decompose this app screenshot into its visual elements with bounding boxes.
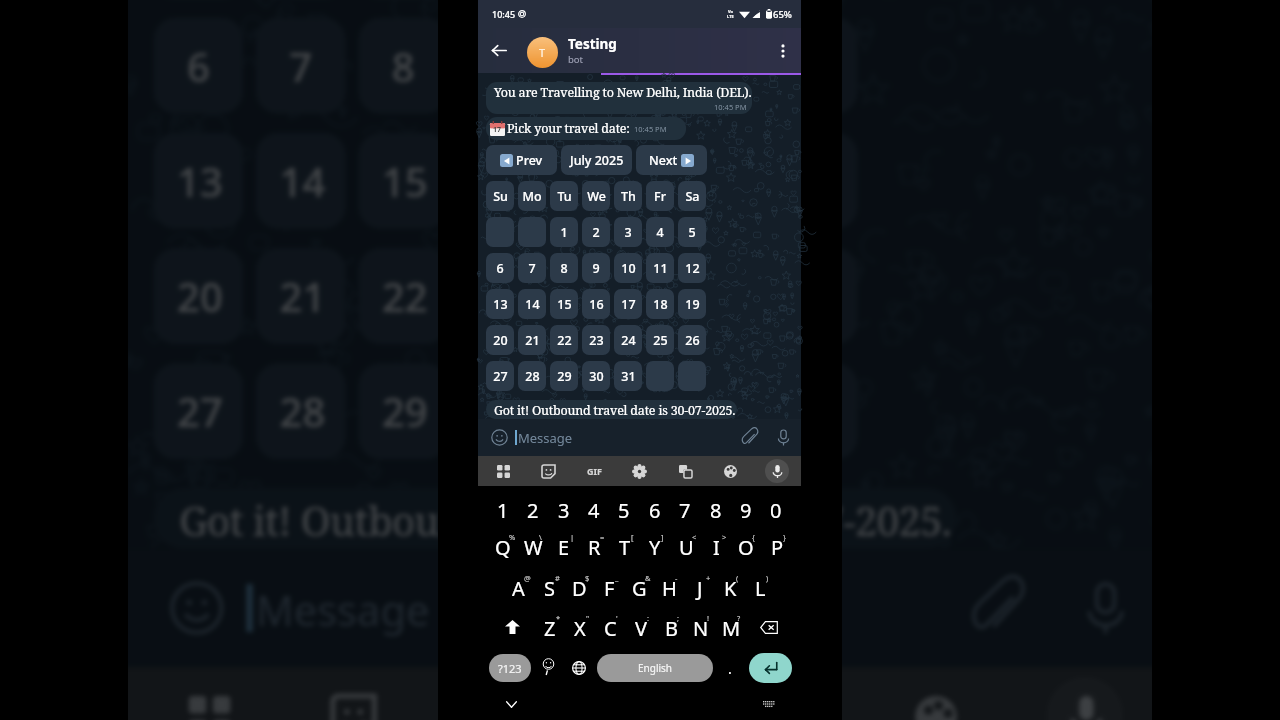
button[interactable]: P xyxy=(762,528,792,566)
button[interactable]: Message xyxy=(510,419,730,456)
button[interactable]: Attach file xyxy=(739,427,759,447)
button[interactable]: We xyxy=(582,181,610,211)
button[interactable]: 31 xyxy=(563,363,653,459)
button[interactable]: 13 xyxy=(154,133,243,229)
button[interactable]: 10 xyxy=(614,253,642,283)
button[interactable]: V xyxy=(626,609,656,647)
button[interactable]: 22 xyxy=(358,248,448,344)
button[interactable]: Voice input xyxy=(765,459,789,483)
button[interactable]: 30 xyxy=(582,361,610,391)
button[interactable]: 17 xyxy=(614,289,642,319)
button[interactable]: 18 xyxy=(666,133,755,229)
button[interactable]: Message xyxy=(230,549,934,667)
button[interactable]: I xyxy=(701,528,731,566)
button[interactable]: 13 xyxy=(486,289,514,319)
button[interactable]: Emoji xyxy=(163,574,227,638)
button[interactable]: 21 xyxy=(518,325,546,355)
button[interactable]: GIF xyxy=(461,667,538,720)
button[interactable]: 9 xyxy=(582,253,610,283)
button[interactable]: 20 xyxy=(486,325,514,355)
button[interactable]: Theme xyxy=(899,667,970,720)
button[interactable]: 18 xyxy=(646,289,674,319)
button[interactable]: . xyxy=(718,652,742,684)
button[interactable]: S xyxy=(534,569,564,607)
button[interactable] xyxy=(646,361,674,391)
button[interactable]: Emoji xyxy=(489,427,509,447)
button[interactable] xyxy=(518,217,546,247)
button[interactable]: B xyxy=(656,609,686,647)
button[interactable]: ?123 xyxy=(489,654,531,682)
button[interactable]: 4 xyxy=(579,491,609,529)
button[interactable]: Voice message xyxy=(1072,574,1136,638)
button[interactable]: Q xyxy=(488,528,518,566)
button[interactable]: K xyxy=(715,569,745,607)
button[interactable]: 10 xyxy=(563,18,653,114)
button[interactable]: Mo xyxy=(518,181,546,211)
button[interactable]: 25 xyxy=(666,248,755,344)
button[interactable]: 23 xyxy=(582,325,610,355)
button[interactable]: Prev xyxy=(486,145,557,175)
button[interactable]: 28 xyxy=(518,361,546,391)
button[interactable]: G xyxy=(624,569,654,607)
button[interactable]: Y xyxy=(640,528,670,566)
button[interactable]: 22 xyxy=(550,325,578,355)
button[interactable]: 21 xyxy=(256,248,346,344)
button[interactable]: 5 xyxy=(678,217,706,247)
button[interactable]: N xyxy=(686,609,716,647)
button[interactable]: Apps xyxy=(492,456,514,486)
button[interactable]: English xyxy=(597,654,713,682)
button[interactable]: 1 xyxy=(550,217,578,247)
button[interactable]: 6 xyxy=(154,18,243,114)
button[interactable]: Emoji xyxy=(535,652,561,684)
button[interactable]: 28 xyxy=(256,363,346,459)
button[interactable]: 15 xyxy=(358,133,448,229)
button[interactable]: 25 xyxy=(646,325,674,355)
button[interactable]: 19 xyxy=(768,133,858,229)
button[interactable]: Attach file xyxy=(963,574,1027,638)
button[interactable]: 20 xyxy=(154,248,243,344)
button[interactable]: Keyboard layout xyxy=(759,694,779,714)
button[interactable]: 8 xyxy=(550,253,578,283)
button[interactable]: Stickers xyxy=(537,456,559,486)
button[interactable]: 6 xyxy=(486,253,514,283)
button[interactable]: 17 xyxy=(563,133,653,229)
button[interactable]: Theme xyxy=(719,456,741,486)
button[interactable]: 26 xyxy=(768,248,858,344)
button[interactable]: 16 xyxy=(461,133,550,229)
button[interactable]: 11 xyxy=(666,18,755,114)
button[interactable]: 14 xyxy=(256,133,346,229)
button[interactable] xyxy=(678,361,706,391)
button[interactable]: M xyxy=(716,609,746,647)
button[interactable]: 23 xyxy=(461,248,550,344)
button[interactable]: 30 xyxy=(461,363,550,459)
button[interactable]: D xyxy=(564,569,594,607)
button[interactable]: 9 xyxy=(731,491,761,529)
button[interactable]: 14 xyxy=(518,289,546,319)
button[interactable]: Enter xyxy=(749,653,792,683)
button[interactable]: A xyxy=(503,569,533,607)
button[interactable]: 11 xyxy=(646,253,674,283)
button[interactable]: 3 xyxy=(549,491,579,529)
button[interactable] xyxy=(768,363,858,459)
button[interactable]: Back xyxy=(489,40,509,60)
button[interactable]: 8 xyxy=(701,491,731,529)
button[interactable]: 24 xyxy=(563,248,653,344)
button[interactable]: 7 xyxy=(256,18,346,114)
button[interactable]: 6 xyxy=(640,491,670,529)
button[interactable]: 27 xyxy=(154,363,243,459)
button[interactable]: July 2025 xyxy=(561,145,632,175)
button[interactable]: 2 xyxy=(518,491,548,529)
button[interactable]: O xyxy=(731,528,761,566)
button[interactable]: 3 xyxy=(614,217,642,247)
button[interactable]: Switch language xyxy=(566,652,592,684)
button[interactable]: 15 xyxy=(550,289,578,319)
button[interactable]: 7 xyxy=(518,253,546,283)
button[interactable]: Apps xyxy=(173,667,243,720)
button[interactable]: More options xyxy=(772,40,794,62)
button[interactable]: 0 xyxy=(761,491,791,529)
button[interactable]: U xyxy=(671,528,701,566)
button[interactable]: 12 xyxy=(678,253,706,283)
button[interactable]: Fr xyxy=(646,181,674,211)
button[interactable]: GIF xyxy=(582,456,606,486)
button[interactable]: 26 xyxy=(678,325,706,355)
